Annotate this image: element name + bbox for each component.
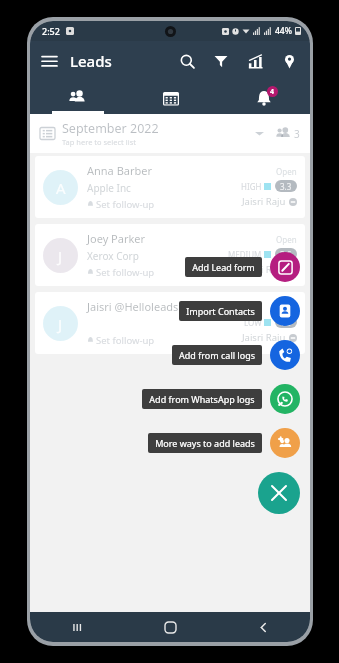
button[interactable]: More ways to add leads	[270, 428, 300, 458]
staticText: 2.6	[280, 249, 292, 260]
button[interactable]: Calendar tab	[124, 81, 217, 114]
staticText: J	[58, 314, 63, 334]
button[interactable]: Add from call logs	[172, 345, 262, 365]
staticText: More ways to add leads	[155, 437, 255, 449]
staticText: Xerox Corp	[87, 249, 139, 263]
staticText: Leads	[70, 51, 112, 71]
button[interactable]: Import Contacts	[270, 296, 300, 326]
staticText: 2:52	[42, 25, 60, 37]
staticText: Jaisri @Helloleads	[87, 299, 179, 314]
button[interactable]: More ways to add leads	[148, 433, 262, 453]
staticText: Add from WhatsApp logs	[149, 393, 255, 405]
staticText: Tap here to select list	[62, 137, 136, 147]
staticText: Joey Parker	[87, 231, 146, 246]
staticText: MEDIUM	[228, 249, 262, 260]
button[interactable]: Reports	[238, 44, 272, 78]
button[interactable]: A	[35, 156, 305, 218]
staticText: Set follow-up	[96, 266, 155, 279]
staticText: 3	[294, 127, 300, 141]
button[interactable]: Back	[217, 612, 310, 642]
staticText: Set follow-up	[96, 334, 155, 347]
staticText: HIGH	[241, 181, 262, 192]
button[interactable]: September 2022	[30, 114, 310, 153]
button[interactable]: Close menu	[258, 472, 300, 514]
staticText: Add from call logs	[179, 349, 255, 361]
button[interactable]: Add from call logs	[270, 340, 300, 370]
staticText: 4	[270, 87, 275, 97]
button[interactable]: Map	[272, 44, 306, 78]
staticText: Open	[276, 302, 297, 313]
staticText: Open	[276, 166, 297, 177]
staticText: Jaisri Raju	[242, 195, 286, 208]
button[interactable]: J	[35, 292, 305, 354]
staticText: Add Lead form	[192, 261, 255, 273]
button[interactable]: Home	[124, 612, 217, 642]
button[interactable]: Filter	[204, 44, 238, 78]
staticText: LOW	[244, 317, 262, 328]
button[interactable]: Recents	[30, 612, 124, 642]
staticText: J	[58, 246, 63, 266]
staticText: 44%	[275, 25, 292, 37]
button[interactable]: Menu	[30, 42, 68, 80]
button[interactable]: Add from WhatsApp logs	[270, 384, 300, 414]
button[interactable]: Search	[170, 44, 204, 78]
button[interactable]: Import Contacts	[179, 301, 262, 321]
staticText: Anna Barber	[87, 163, 153, 178]
staticText: Jaisri Raju	[242, 331, 286, 344]
button[interactable]: Add Lead form	[270, 252, 300, 282]
button[interactable]: Leads tab	[30, 81, 124, 114]
button[interactable]: Notifications tab	[217, 81, 310, 114]
button[interactable]: Add Lead form	[185, 257, 262, 277]
staticText: Jaisri Raju	[242, 263, 286, 276]
staticText: Apple Inc	[87, 181, 131, 195]
button[interactable]: Add from WhatsApp logs	[142, 389, 262, 409]
staticText: Import Contacts	[186, 305, 255, 317]
staticText: Set follow-up	[96, 198, 155, 211]
staticText: A	[56, 178, 66, 198]
staticText: September 2022	[62, 120, 159, 137]
button[interactable]: J	[35, 224, 305, 286]
staticText: 3.3	[280, 181, 292, 192]
staticText: Open	[276, 234, 297, 245]
staticText: 1.9	[280, 317, 292, 328]
